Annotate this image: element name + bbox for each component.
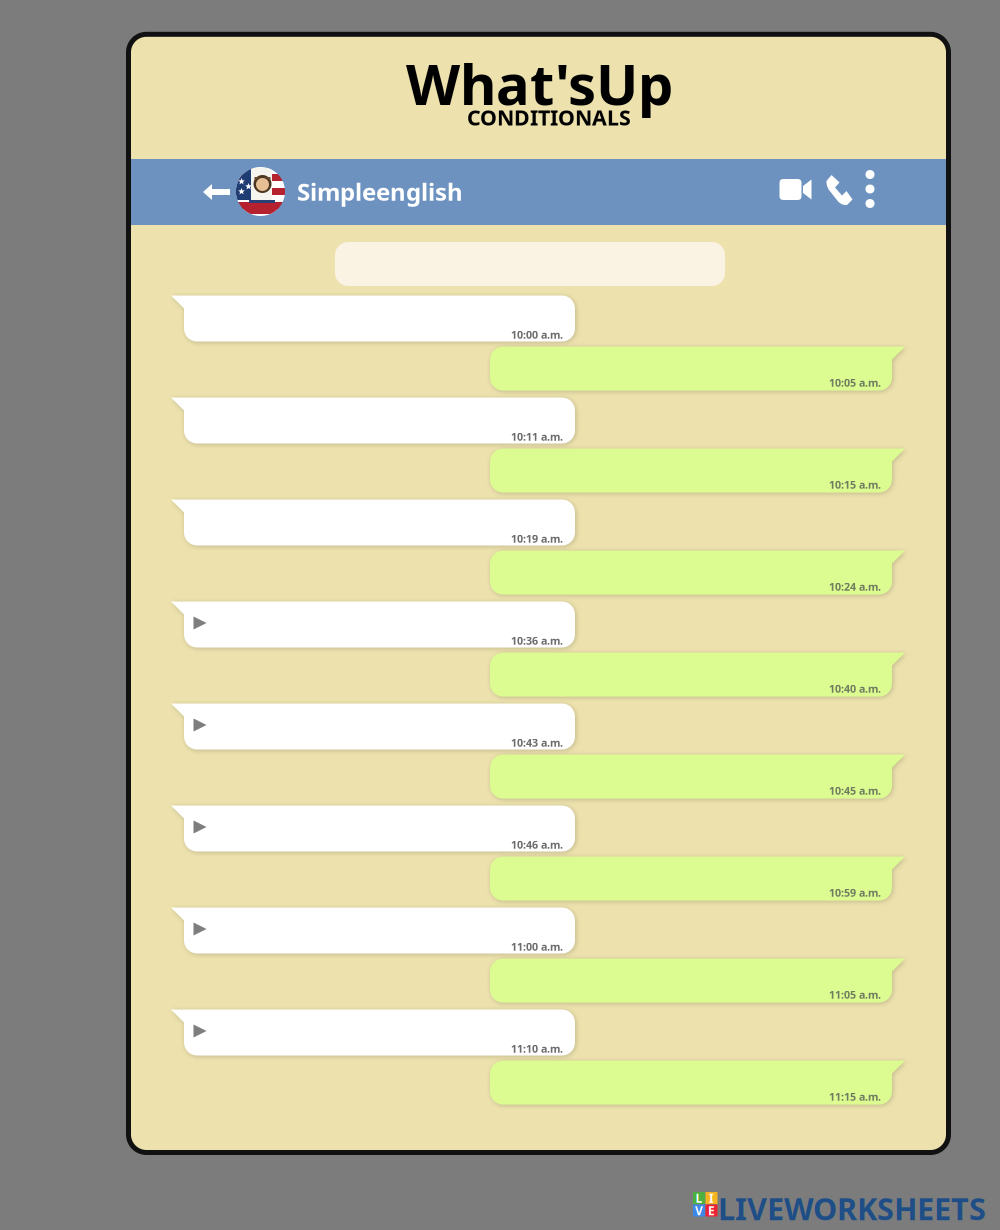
button[interactable]: 10:05 a.m. [490,347,905,391]
staticText: 10:15 a.m. [829,478,881,492]
staticText: CONDITIONALS [467,103,631,131]
button[interactable]: 10:46 a.m. [171,805,575,851]
button[interactable]: 11:05 a.m. [490,959,905,1003]
button[interactable]: 10:45 a.m. [490,755,905,799]
button[interactable]: 11:00 a.m. [171,907,575,953]
button[interactable]: 10:43 a.m. [171,703,575,749]
button[interactable]: Voice call [818,167,860,213]
staticText: E [708,1202,715,1218]
staticText: 10:36 a.m. [511,633,563,648]
staticText: I [709,1190,714,1206]
button[interactable]: 10:19 a.m. [171,499,575,545]
button[interactable]: 10:36 a.m. [171,601,575,647]
staticText: L [695,1190,702,1206]
staticText: 11:05 a.m. [829,988,881,1002]
staticText: Simpleenglish [297,176,463,207]
button[interactable]: 11:15 a.m. [490,1061,905,1105]
staticText: 10:40 a.m. [829,682,881,696]
button[interactable]: Video call [771,171,819,208]
staticText: 10:43 a.m. [511,735,563,750]
button[interactable]: 10:00 a.m. [171,295,575,341]
staticText: 10:59 a.m. [829,886,881,900]
button[interactable]: 10:11 a.m. [171,397,575,443]
staticText: 10:05 a.m. [829,376,881,390]
staticText: 10:46 a.m. [511,837,563,852]
button[interactable]: Back [193,174,240,210]
button[interactable]: 10:40 a.m. [490,653,905,697]
staticText: V [695,1202,703,1218]
staticText: 10:24 a.m. [829,580,881,594]
staticText: 10:00 a.m. [511,327,563,342]
staticText: 11:00 a.m. [511,939,563,954]
staticText: 10:45 a.m. [829,784,881,798]
staticText: 10:11 a.m. [511,429,563,444]
button[interactable]: More options [855,166,884,212]
staticText: 11:15 a.m. [829,1090,881,1104]
button[interactable]: 10:24 a.m. [490,551,905,595]
button[interactable]: 10:59 a.m. [490,857,905,901]
staticText: 11:10 a.m. [511,1041,563,1056]
button[interactable]: 11:10 a.m. [171,1009,575,1055]
staticText: What'sUp [406,46,673,120]
staticText: LIVEWORKSHEETS [718,1188,986,1229]
button[interactable]: 10:15 a.m. [490,449,905,493]
staticText: 10:19 a.m. [511,531,563,546]
button[interactable]: Simpleenglish [236,163,463,220]
